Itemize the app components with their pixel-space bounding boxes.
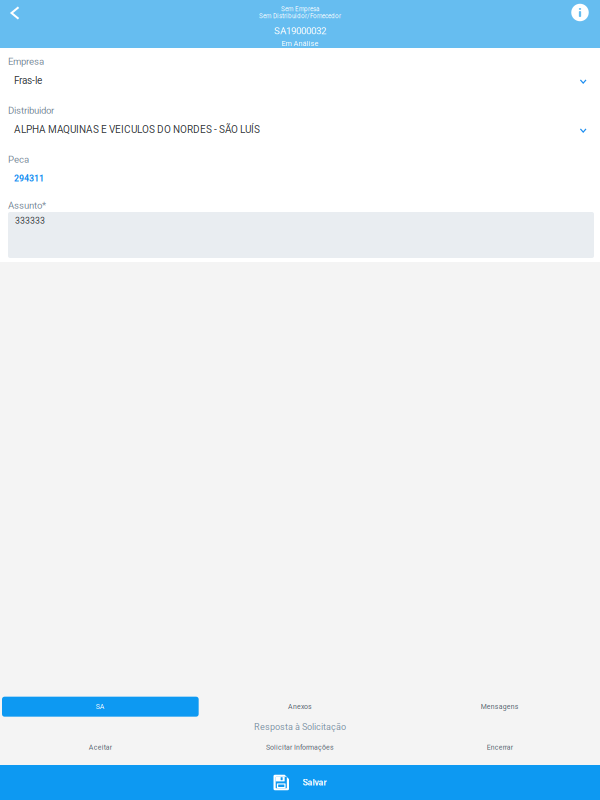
staticText: Solicitar Informações (266, 743, 334, 751)
staticText: Sem Empresa (281, 5, 319, 13)
button[interactable]: Salvar (0, 765, 600, 800)
button[interactable]: Information (564, 0, 596, 26)
staticText: Salvar (302, 777, 326, 788)
staticText: Anexos (288, 703, 312, 711)
staticText: Resposta à Solicitação (254, 722, 346, 732)
button[interactable]: Solicitar Informações (202, 737, 398, 757)
staticText: SA19000032 (274, 25, 326, 37)
staticText: Sem Distribuidor/Fornecedor (259, 12, 341, 20)
button[interactable]: Anexos (202, 697, 398, 717)
button[interactable]: Aceitar (2, 737, 199, 757)
staticText: Distribuidor (8, 105, 54, 116)
button[interactable]: Distribuidor (0, 101, 600, 145)
button[interactable]: Peca (0, 150, 600, 194)
staticText: Em Análise (281, 39, 318, 48)
staticText: Assunto* (8, 200, 46, 211)
button[interactable]: Encerrar (401, 737, 598, 757)
staticText: Empresa (8, 56, 44, 67)
staticText: Mensagens (481, 703, 519, 711)
staticText: 333333 (15, 215, 45, 226)
staticText: Encerrar (487, 743, 513, 751)
staticText: Aceitar (89, 743, 112, 751)
button[interactable]: Back (0, 0, 30, 27)
staticText: 294311 (14, 173, 44, 184)
button[interactable]: Mensagens (401, 697, 598, 717)
staticText: Peca (8, 154, 29, 165)
button[interactable]: Empresa (0, 52, 600, 96)
staticText: Fras-le (14, 75, 42, 86)
staticText: SA (96, 703, 105, 711)
staticText: ALPHA MAQUINAS E VEICULOS DO NORDES - SÃ… (14, 124, 260, 135)
button[interactable]: SA (2, 697, 199, 717)
